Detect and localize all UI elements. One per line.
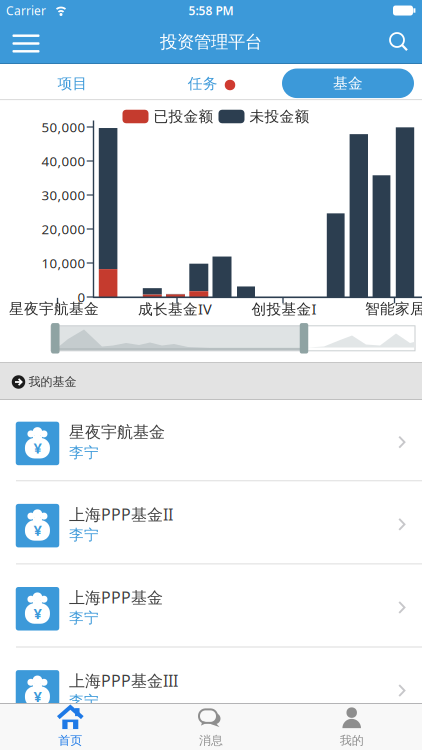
staticText: 项目: [57, 74, 87, 92]
staticText: 李宁: [69, 609, 99, 627]
staticText: 创投基金I: [251, 299, 316, 319]
staticText: 已投金额: [153, 107, 213, 125]
button[interactable]: 任务: [156, 66, 266, 100]
staticText: 未投金额: [249, 107, 309, 125]
staticText: ¥: [33, 438, 41, 458]
staticText: 投资管理平台: [160, 31, 262, 53]
staticText: 30,000: [41, 186, 85, 204]
button[interactable]: 首页: [0, 704, 140, 750]
staticText: ¥: [33, 603, 41, 623]
button[interactable]: 我的基金: [0, 362, 422, 400]
button[interactable]: 项目: [17, 66, 127, 100]
staticText: 0: [77, 288, 85, 306]
button[interactable]: ¥: [0, 564, 422, 647]
staticText: 李宁: [69, 526, 99, 544]
staticText: 上海PPP基金II: [69, 504, 173, 525]
staticText: 基金: [333, 74, 363, 92]
staticText: 消息: [199, 733, 223, 748]
staticText: 智能家居基金: [365, 300, 422, 318]
staticText: 成长基金IV: [138, 299, 212, 319]
staticText: 首页: [58, 733, 82, 748]
button[interactable]: ¥: [0, 400, 422, 481]
staticText: 我的基金: [28, 374, 76, 389]
button[interactable]: 消息: [141, 704, 281, 750]
staticText: 50,000: [41, 118, 85, 136]
button[interactable]: [4, 23, 48, 63]
button[interactable]: ¥: [0, 481, 422, 564]
staticText: 星夜宇航基金: [9, 300, 99, 318]
button[interactable]: 我的: [282, 704, 422, 750]
button[interactable]: 基金: [282, 68, 414, 98]
staticText: 上海PPP基金: [69, 587, 163, 608]
staticText: 任务: [188, 74, 218, 92]
staticText: 20,000: [41, 220, 85, 238]
staticText: 李宁: [69, 444, 99, 462]
staticText: 5:58 PM: [188, 2, 233, 18]
staticText: Carrier: [6, 2, 46, 18]
staticText: 我的: [340, 733, 364, 748]
staticText: 星夜宇航基金: [69, 422, 165, 442]
button[interactable]: ¥: [0, 647, 422, 731]
staticText: ¥: [33, 687, 41, 706]
button[interactable]: [378, 22, 418, 62]
staticText: 10,000: [41, 254, 85, 272]
staticText: 40,000: [41, 152, 85, 170]
staticText: ¥: [33, 520, 41, 540]
staticText: 上海PPP基金III: [69, 670, 178, 691]
staticText: 李宁: [69, 692, 99, 710]
